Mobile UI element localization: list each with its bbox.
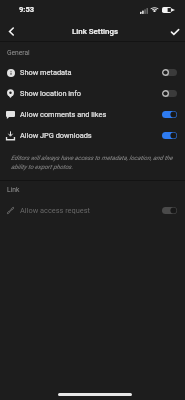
- button[interactable]: Show metadata: [0, 62, 185, 83]
- staticText: 9:53: [19, 5, 35, 14]
- staticText: Link Settings: [72, 27, 118, 36]
- button[interactable]: Toggle: [162, 132, 177, 139]
- staticText: Allow comments and likes: [20, 110, 107, 119]
- staticText: General: [7, 49, 30, 57]
- button[interactable]: Show location info: [0, 83, 185, 104]
- button[interactable]: Back: [2, 22, 21, 41]
- staticText: Show metadata: [20, 68, 72, 77]
- staticText: Link: [7, 186, 20, 194]
- staticText: Allow JPG downloads: [20, 131, 92, 140]
- staticText: Editors will always have access to metad…: [11, 154, 185, 171]
- button[interactable]: Toggle: [162, 207, 177, 214]
- staticText: Allow access request: [20, 206, 90, 215]
- button[interactable]: Allow JPG downloads: [0, 125, 185, 146]
- staticText: Show location info: [20, 89, 81, 98]
- button[interactable]: Done: [165, 22, 184, 41]
- button[interactable]: Allow access request: [0, 200, 185, 221]
- button[interactable]: Toggle: [162, 90, 177, 97]
- button[interactable]: Toggle: [162, 111, 177, 118]
- button[interactable]: Allow comments and likes: [0, 104, 185, 125]
- button[interactable]: Toggle: [162, 69, 177, 76]
